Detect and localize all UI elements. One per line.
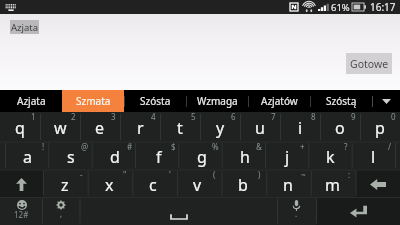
- staticText: :: [348, 169, 351, 180]
- staticText: $: [171, 141, 176, 152]
- staticText: z: [61, 174, 69, 196]
- button[interactable]: Wzmaga: [186, 90, 248, 112]
- button[interactable]: More suggestions: [372, 90, 400, 112]
- staticText: c: [149, 174, 157, 196]
- button[interactable]: y: [200, 112, 240, 142]
- button[interactable]: t: [160, 112, 200, 142]
- staticText: .: [295, 208, 298, 219]
- staticText: !: [42, 141, 45, 152]
- staticText: @: [81, 141, 89, 152]
- staticText: l: [371, 146, 376, 168]
- staticText: q: [15, 117, 25, 139]
- button[interactable]: j: [266, 142, 309, 170]
- button[interactable]: k: [309, 142, 352, 170]
- staticText: 6: [231, 111, 236, 122]
- button[interactable]: v: [175, 170, 220, 198]
- staticText: s: [67, 146, 75, 168]
- staticText: Azjatów: [261, 94, 298, 108]
- button[interactable]: o: [320, 112, 360, 142]
- staticText: k: [326, 146, 335, 168]
- button[interactable]: Szóstą: [310, 90, 372, 112]
- staticText: 3: [111, 111, 116, 122]
- staticText: ): [258, 169, 261, 180]
- button[interactable]: Settings: [42, 198, 80, 225]
- button[interactable]: g: [180, 142, 223, 170]
- button[interactable]: e: [80, 112, 120, 142]
- staticText: ": [123, 169, 127, 180]
- button[interactable]: Szmata: [62, 90, 124, 112]
- button[interactable]: Gotowe: [346, 53, 392, 74]
- staticText: w: [54, 117, 67, 139]
- staticText: n: [283, 174, 293, 196]
- staticText: g: [197, 146, 207, 168]
- staticText: #: [127, 141, 133, 152]
- staticText: +: [300, 141, 305, 152]
- staticText: 61%: [331, 1, 350, 14]
- staticText: &: [256, 141, 262, 152]
- button[interactable]: p: [360, 112, 400, 142]
- staticText: Gotowe: [350, 57, 389, 71]
- button[interactable]: h: [223, 142, 266, 170]
- staticText: (: [213, 169, 216, 180]
- button[interactable]: m: [310, 170, 355, 198]
- staticText: o: [335, 117, 345, 139]
- staticText: 12#: [14, 209, 29, 220]
- staticText: 8: [311, 111, 316, 122]
- button[interactable]: l: [352, 142, 395, 170]
- button[interactable]: n: [265, 170, 310, 198]
- staticText: Azjata: [11, 21, 39, 34]
- staticText: /: [388, 141, 391, 152]
- button[interactable]: Azjata: [0, 90, 62, 112]
- staticText: 4: [151, 111, 156, 122]
- button[interactable]: q: [0, 112, 40, 142]
- staticText: %: [212, 141, 219, 152]
- button[interactable]: s: [49, 142, 93, 170]
- staticText: 9: [351, 111, 356, 122]
- staticText: e: [95, 117, 105, 139]
- staticText: v: [193, 174, 202, 196]
- button[interactable]: u: [240, 112, 280, 142]
- staticText: ,: [60, 208, 63, 219]
- button[interactable]: r: [120, 112, 160, 142]
- button[interactable]: Emoji and symbols: [0, 198, 42, 225]
- button[interactable]: d: [93, 142, 137, 170]
- staticText: f: [156, 146, 162, 168]
- button[interactable]: Shift: [0, 170, 43, 198]
- button[interactable]: Azjata: [10, 20, 39, 34]
- staticText: Szósta: [140, 94, 171, 108]
- staticText: h: [240, 146, 250, 168]
- staticText: ': [169, 169, 171, 180]
- button[interactable]: i: [280, 112, 320, 142]
- button[interactable]: w: [40, 112, 80, 142]
- staticText: u: [255, 117, 265, 139]
- staticText: ~: [301, 169, 306, 180]
- button[interactable]: Backspace: [355, 170, 400, 198]
- button[interactable]: x: [87, 170, 131, 198]
- button[interactable]: Space: [80, 198, 277, 225]
- button[interactable]: Enter: [316, 198, 400, 225]
- staticText: 16:17: [370, 0, 396, 14]
- staticText: 2: [71, 111, 76, 122]
- staticText: a: [23, 146, 32, 168]
- button[interactable]: z: [43, 170, 87, 198]
- staticText: 5: [191, 111, 196, 122]
- staticText: 0: [391, 111, 396, 122]
- staticText: 7: [271, 111, 276, 122]
- staticText: Wzmaga: [197, 94, 238, 108]
- staticText: Azjata: [17, 94, 46, 108]
- button[interactable]: Szósta: [124, 90, 186, 112]
- staticText: Szóstą: [326, 94, 357, 108]
- button[interactable]: Azjatów: [248, 90, 310, 112]
- button[interactable]: f: [137, 142, 180, 170]
- staticText: x: [105, 174, 114, 196]
- staticText: d: [110, 146, 120, 168]
- button[interactable]: c: [131, 170, 175, 198]
- button[interactable]: b: [220, 170, 265, 198]
- staticText: p: [375, 117, 385, 139]
- staticText: i: [298, 117, 303, 139]
- staticText: b: [238, 174, 248, 196]
- staticText: 1: [31, 111, 36, 122]
- staticText: r: [137, 117, 144, 139]
- button[interactable]: a: [5, 142, 49, 170]
- button[interactable]: Voice input: [277, 198, 316, 225]
